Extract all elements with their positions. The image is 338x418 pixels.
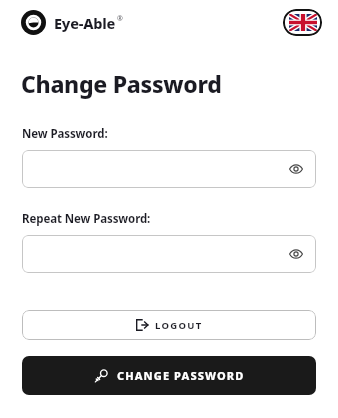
staticText: CHANGE PASSWORD (117, 368, 245, 383)
staticText: Change Password (21, 68, 222, 99)
button[interactable]: LOGOUT (22, 310, 316, 340)
button[interactable]: Password input (22, 235, 316, 273)
button[interactable]: Show password (286, 244, 306, 264)
staticText: New Password: (22, 126, 108, 142)
button[interactable]: Password input (22, 150, 316, 188)
staticText: LOGOUT (155, 319, 203, 332)
button[interactable]: CHANGE PASSWORD (22, 356, 316, 395)
staticText: ® (117, 14, 123, 24)
staticText: Eye-Able (54, 13, 116, 33)
button[interactable]: Change language (283, 9, 322, 36)
button[interactable]: Eye-Able (21, 10, 123, 35)
staticText: Repeat New Password: (22, 211, 151, 227)
button[interactable]: Show password (286, 159, 306, 179)
